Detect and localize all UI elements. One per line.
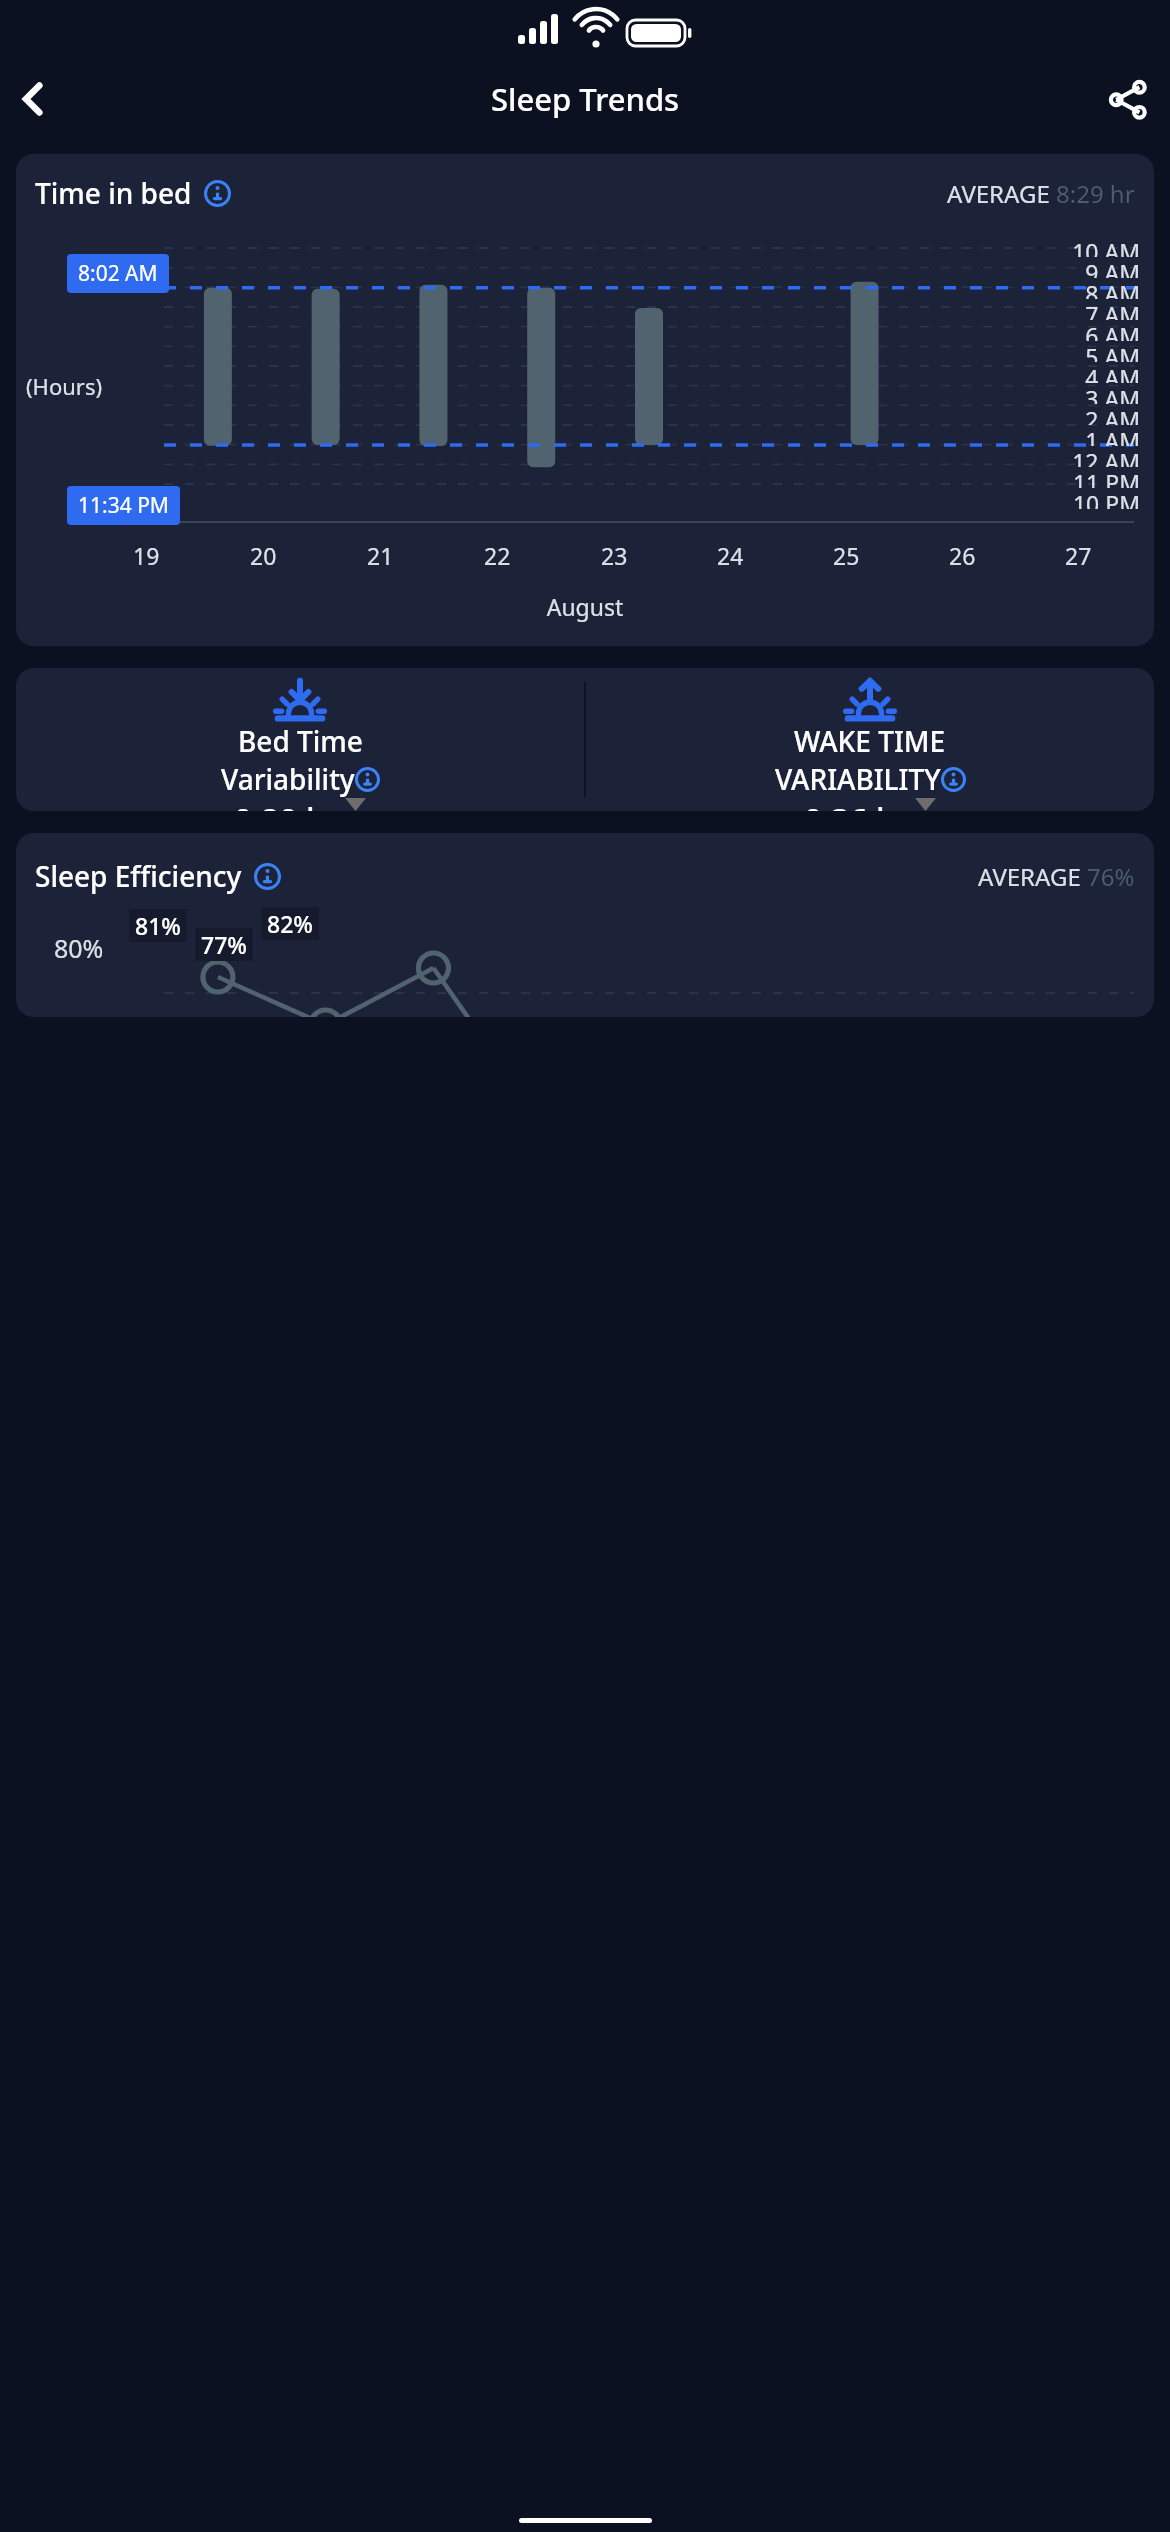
button[interactable]: Time in bed — [16, 154, 1154, 646]
staticText: 19 — [133, 540, 160, 571]
staticText: 20 — [250, 540, 277, 571]
staticText: 5 AM — [1034, 341, 1140, 362]
staticText: Time in bed — [35, 174, 192, 212]
staticText: 11:34 PM — [78, 491, 169, 520]
staticText: 2 AM — [1034, 404, 1140, 425]
staticText: 76% — [1087, 860, 1135, 893]
staticText: Bed Time — [238, 722, 363, 760]
staticText: 23 — [601, 540, 628, 571]
staticText: 8:02 AM — [78, 259, 158, 288]
staticText: Sleep Efficiency — [35, 857, 242, 895]
button[interactable]: Information — [254, 863, 281, 890]
staticText: 27 — [1065, 540, 1092, 571]
button[interactable]: Wake time icon — [586, 668, 1154, 811]
staticText: (Hours) — [26, 371, 103, 401]
button[interactable]: Information — [941, 767, 966, 792]
staticText: 12 AM — [1034, 446, 1140, 467]
staticText: 10 AM — [1034, 236, 1140, 257]
staticText: 11 PM — [1034, 467, 1140, 488]
staticText: 26 — [949, 540, 976, 571]
staticText: WAKE TIME — [794, 722, 946, 760]
staticText: 80% — [54, 931, 104, 965]
button[interactable]: Sleep Efficiency — [16, 833, 1154, 1017]
staticText: AVERAGE — [978, 860, 1087, 893]
staticText: 4 AM — [1034, 362, 1140, 383]
staticText: Variability — [221, 760, 355, 798]
staticText: 0:36 hr — [804, 798, 910, 811]
staticText: 10 PM — [1034, 488, 1140, 509]
button[interactable]: Share — [1098, 69, 1158, 129]
staticText: 8:29 hr — [1056, 177, 1135, 210]
button[interactable]: Bed time icon — [16, 668, 584, 811]
staticText: 81% — [135, 910, 181, 941]
staticText: 22 — [484, 540, 511, 571]
staticText: 21 — [367, 540, 394, 571]
button[interactable]: Information — [204, 180, 231, 207]
staticText: August — [16, 591, 1154, 622]
staticText: 1 AM — [1034, 425, 1140, 446]
staticText: 3 AM — [1034, 383, 1140, 404]
button[interactable]: Back — [4, 70, 62, 128]
staticText: 25 — [833, 540, 860, 571]
staticText: 0:20 hr — [234, 798, 340, 811]
button[interactable]: Information — [355, 767, 380, 792]
staticText: 8 AM — [1034, 278, 1140, 299]
staticText: 9 AM — [1034, 257, 1140, 278]
staticText: VARIABILITY — [775, 760, 941, 798]
staticText: 77% — [201, 929, 247, 960]
staticText: Sleep Trends — [491, 78, 680, 120]
staticText: AVERAGE — [947, 177, 1056, 210]
other: Bed time icon — [273, 680, 327, 720]
other: Wake time icon — [843, 680, 897, 720]
staticText: 7 AM — [1034, 299, 1140, 320]
staticText: 82% — [267, 908, 313, 939]
staticText: 6 AM — [1034, 320, 1140, 341]
staticText: 24 — [717, 540, 744, 571]
